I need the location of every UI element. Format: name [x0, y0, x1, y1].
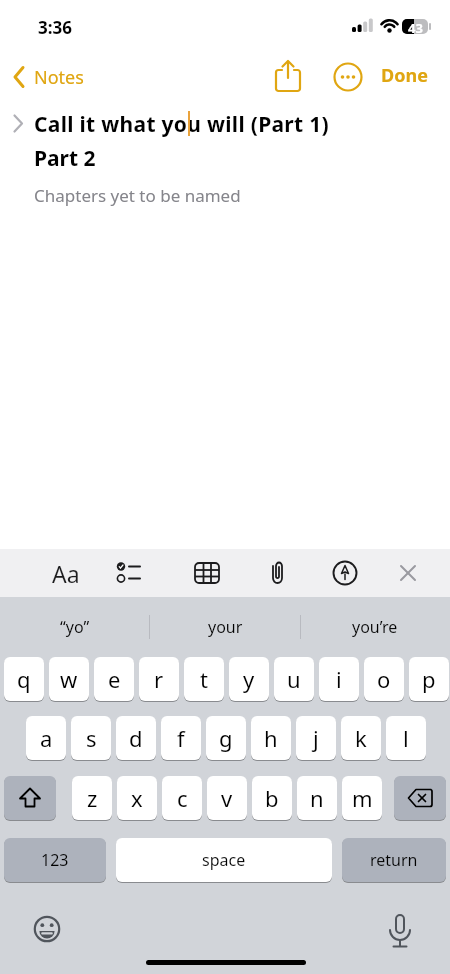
staticText: return [370, 849, 418, 871]
staticText: h [264, 723, 278, 753]
staticText: Done [381, 63, 428, 88]
staticText: a [40, 723, 53, 753]
button[interactable]: t [184, 657, 224, 701]
staticText: c [177, 783, 188, 813]
button[interactable]: n [297, 776, 337, 820]
button[interactable]: f [161, 716, 201, 760]
button[interactable]: e [94, 657, 134, 701]
button[interactable] [270, 58, 306, 96]
button[interactable] [194, 562, 220, 584]
button[interactable]: g [206, 716, 246, 760]
staticText: Aa [52, 558, 80, 589]
staticText: Chapters yet to be named [34, 184, 241, 207]
button[interactable]: o [364, 657, 404, 701]
staticText: Notes [34, 65, 84, 90]
button[interactable]: z [72, 776, 112, 820]
staticText: r [154, 664, 164, 694]
staticText: p [422, 664, 436, 694]
button[interactable]: return [342, 838, 446, 882]
button[interactable]: “yo” [0, 607, 150, 647]
staticText: v [221, 783, 233, 813]
button[interactable]: u [274, 657, 314, 701]
staticText: 43 [408, 19, 423, 34]
button[interactable] [387, 912, 413, 948]
staticText: l [403, 723, 409, 753]
button[interactable]: Notes [10, 60, 110, 94]
button[interactable] [398, 563, 418, 583]
button[interactable] [265, 559, 289, 587]
button[interactable]: your [150, 607, 300, 647]
button[interactable]: x [117, 776, 157, 820]
button[interactable]: h [251, 716, 291, 760]
staticText: j [313, 723, 319, 753]
button[interactable]: q [4, 657, 44, 701]
staticText: g [219, 723, 233, 753]
button[interactable] [333, 62, 363, 92]
staticText: Call it what you will (Part 1) [34, 110, 329, 139]
button[interactable]: m [342, 776, 382, 820]
button[interactable]: b [252, 776, 292, 820]
button[interactable]: Aa [52, 558, 80, 589]
staticText: space [202, 849, 246, 871]
staticText: your [208, 616, 243, 638]
button[interactable]: 123 [4, 838, 106, 882]
staticText: 123 [41, 849, 69, 871]
staticText: m [352, 783, 373, 813]
staticText: y [243, 664, 255, 694]
button[interactable]: i [319, 657, 359, 701]
staticText: Part 2 [34, 144, 96, 173]
staticText: u [287, 664, 301, 694]
button[interactable] [115, 561, 143, 585]
button[interactable]: c [162, 776, 202, 820]
button[interactable] [33, 915, 61, 943]
staticText: 3:36 [38, 16, 72, 39]
staticText: e [108, 664, 121, 694]
staticText: w [60, 664, 78, 694]
button[interactable]: v [207, 776, 247, 820]
button[interactable]: y [229, 657, 269, 701]
button[interactable] [332, 560, 358, 586]
staticText: t [200, 664, 208, 694]
button[interactable]: s [71, 716, 111, 760]
staticText: f [177, 723, 185, 753]
button[interactable]: l [386, 716, 426, 760]
staticText: s [86, 723, 97, 753]
button[interactable]: p [409, 657, 449, 701]
staticText: you’re [352, 616, 398, 638]
button[interactable]: j [296, 716, 336, 760]
staticText: n [310, 783, 324, 813]
staticText: “yo” [60, 616, 90, 638]
button[interactable]: r [139, 657, 179, 701]
staticText: o [377, 664, 391, 694]
staticText: b [265, 783, 279, 813]
button[interactable]: a [26, 716, 66, 760]
button[interactable] [4, 776, 56, 820]
button[interactable]: space [116, 838, 332, 882]
staticText: k [355, 723, 367, 753]
staticText: i [336, 664, 342, 694]
staticText: q [17, 664, 31, 694]
button[interactable]: you’re [300, 607, 450, 647]
button[interactable] [394, 776, 446, 820]
staticText: x [131, 783, 143, 813]
button[interactable]: Done [381, 63, 428, 88]
staticText: z [87, 783, 98, 813]
button[interactable]: w [49, 657, 89, 701]
button[interactable]: k [341, 716, 381, 760]
button[interactable]: d [116, 716, 156, 760]
staticText: d [129, 723, 143, 753]
